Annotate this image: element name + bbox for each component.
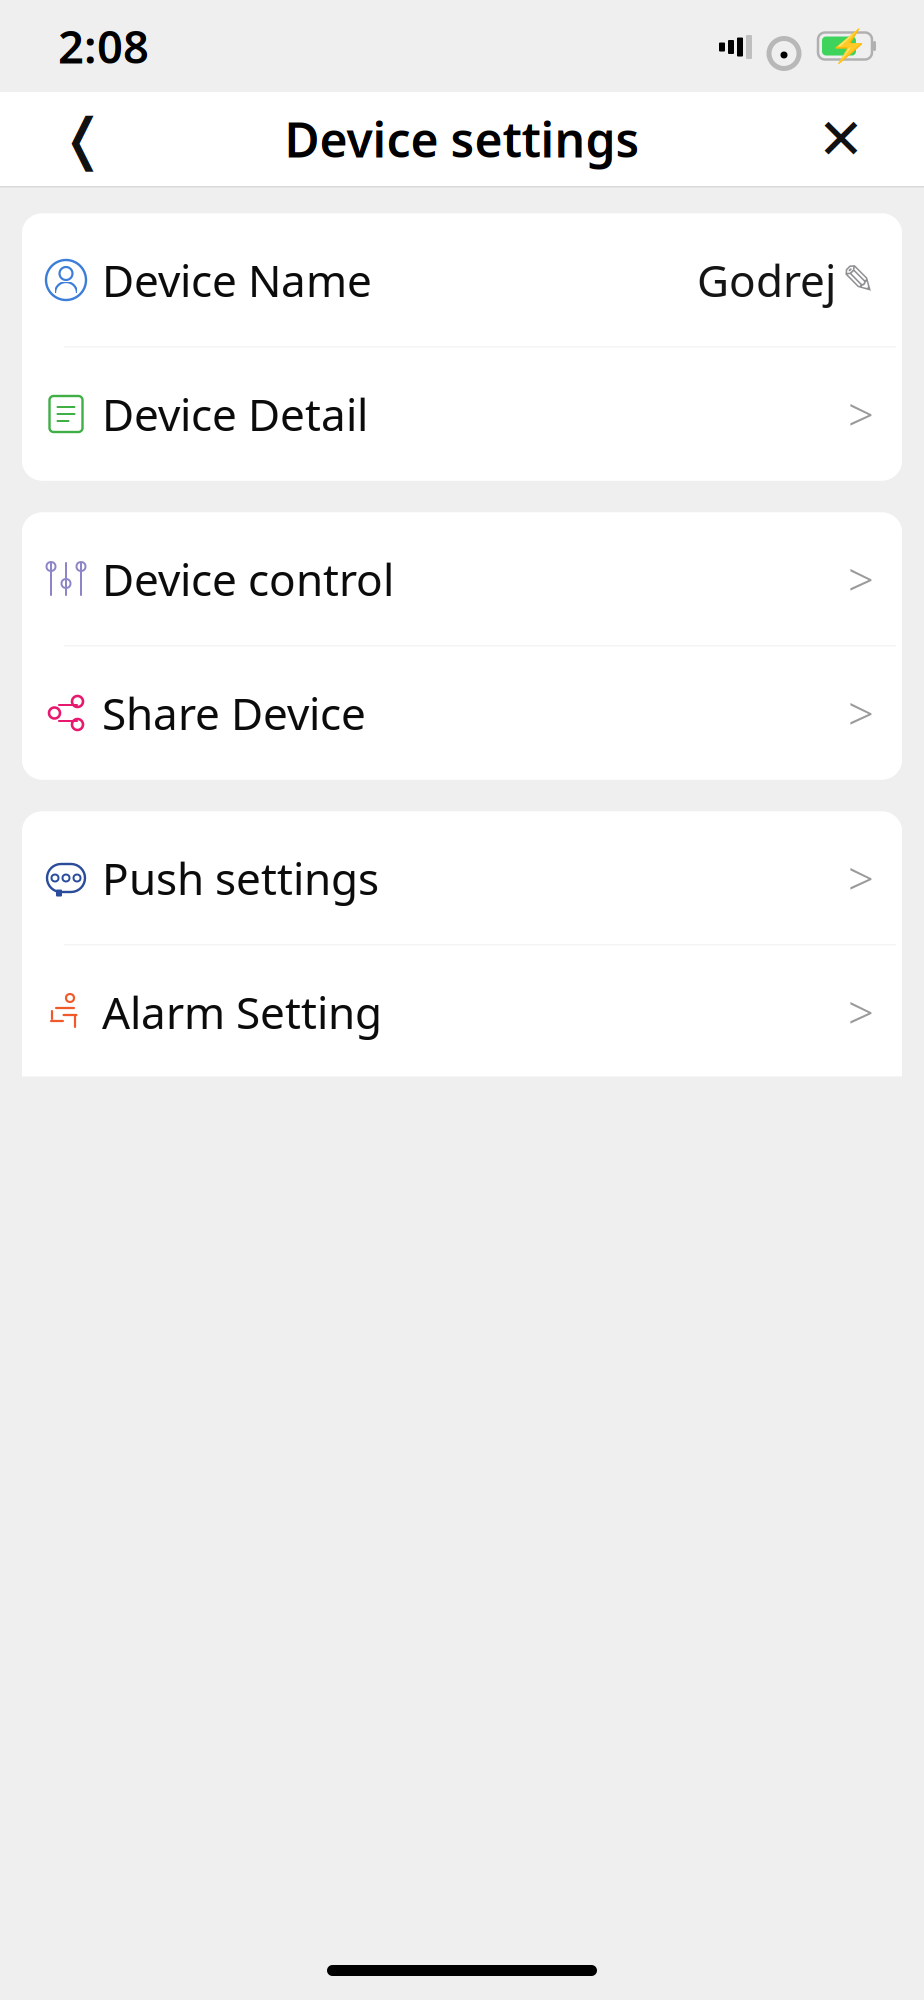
- button[interactable]: Share Device: [22, 646, 902, 779]
- button[interactable]: Back: [38, 94, 128, 184]
- staticText: ✕: [817, 107, 864, 171]
- staticText: Share Device: [102, 684, 366, 742]
- staticText: >: [848, 848, 874, 908]
- button[interactable]: Device Name: [22, 213, 902, 346]
- staticText: Device settings: [284, 107, 639, 171]
- staticText: Device control: [102, 550, 394, 608]
- staticText: ✎: [842, 257, 876, 303]
- staticText: >: [848, 982, 874, 1042]
- button[interactable]: Alarm Setting: [22, 945, 902, 1078]
- button[interactable]: Push settings: [22, 811, 902, 944]
- staticText: 2:08: [58, 16, 149, 76]
- staticText: ⚡: [829, 28, 869, 64]
- staticText: Alarm Setting: [102, 983, 382, 1041]
- button[interactable]: Close: [796, 94, 886, 184]
- button[interactable]: Device Detail: [22, 347, 902, 480]
- staticText: >: [848, 384, 874, 444]
- staticText: Push settings: [102, 849, 379, 907]
- staticText: Godrej: [697, 251, 836, 309]
- staticText: Device Name: [102, 251, 372, 309]
- staticText: >: [848, 683, 874, 743]
- staticText: Device Detail: [102, 385, 368, 443]
- button[interactable]: Device control: [22, 512, 902, 645]
- staticText: >: [848, 549, 874, 609]
- staticText: ❬: [59, 107, 106, 171]
